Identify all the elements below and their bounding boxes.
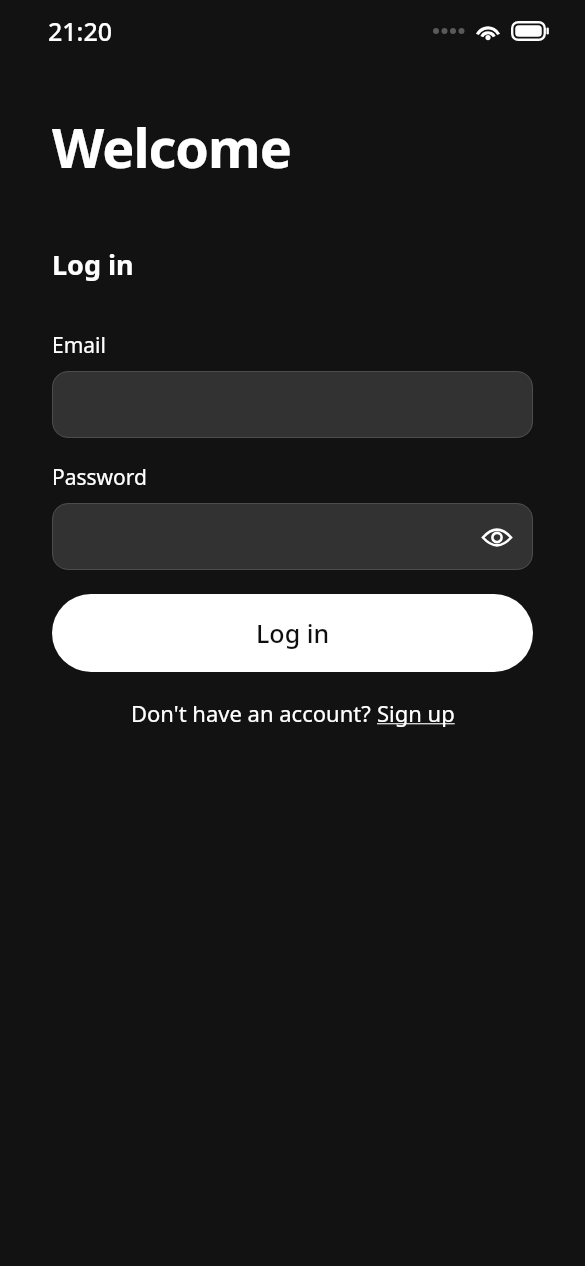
staticText: Password	[52, 463, 147, 492]
staticText: 21:20	[48, 14, 113, 48]
staticText: Welcome	[52, 110, 291, 184]
staticText: Don't have an account?	[131, 698, 377, 728]
staticText: Email	[52, 331, 106, 360]
button[interactable]: Sign up	[377, 698, 455, 728]
staticText: Log in	[52, 246, 134, 283]
button[interactable]: Log in	[52, 594, 533, 672]
staticText: Sign up	[377, 698, 455, 728]
button[interactable]: Show password	[477, 517, 517, 557]
button[interactable]: Password input field	[52, 503, 533, 570]
staticText: Log in	[256, 616, 330, 650]
button[interactable]: Email input field	[52, 371, 533, 438]
